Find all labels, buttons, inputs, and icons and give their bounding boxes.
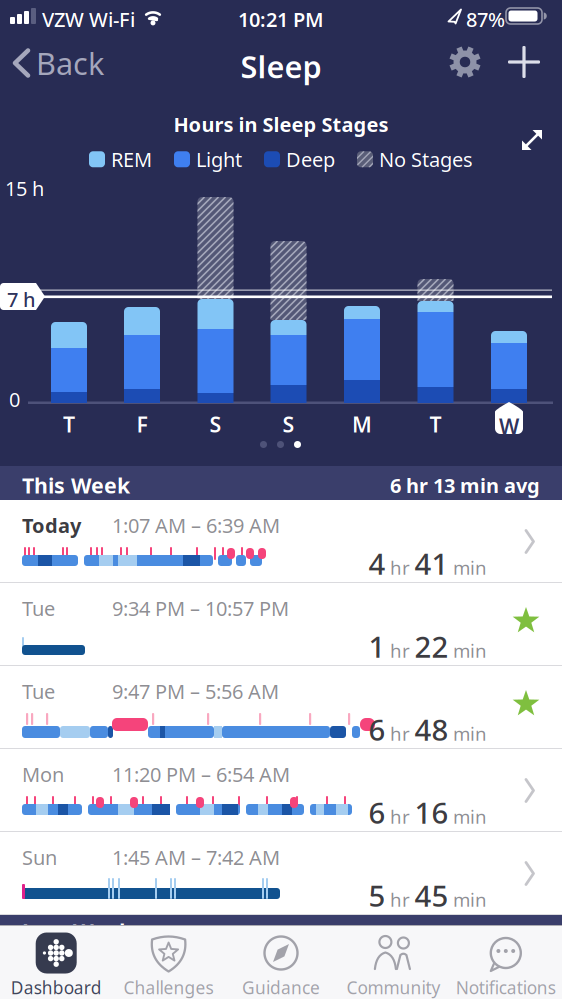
staticText: T	[429, 410, 441, 438]
staticText: 6	[368, 710, 385, 749]
button[interactable]: Sun	[0, 832, 562, 915]
staticText: This Week	[22, 471, 130, 499]
staticText: 22	[414, 627, 448, 666]
button[interactable]: Guidance	[225, 928, 337, 998]
button[interactable]: Tue	[0, 666, 562, 749]
staticText: Deep	[286, 146, 335, 173]
staticText: Tue	[22, 595, 55, 622]
staticText: min	[453, 721, 487, 746]
button[interactable]: Mon	[0, 749, 562, 832]
staticText: M	[352, 410, 372, 438]
staticText: Tue	[22, 678, 55, 705]
staticText: Challenges	[124, 976, 214, 999]
staticText: REM	[111, 146, 152, 173]
staticText: min	[453, 887, 487, 912]
staticText: hr	[390, 887, 410, 912]
button[interactable]: Community	[337, 928, 449, 998]
staticText: S	[282, 410, 294, 438]
staticText: 6	[368, 793, 385, 832]
staticText: 9:47 PM – 5:56 AM	[112, 678, 279, 705]
staticText: Last Week	[22, 917, 132, 945]
staticText: 10:21 PM	[238, 6, 324, 33]
button[interactable]: Settings	[446, 43, 484, 81]
button[interactable]: Add	[507, 45, 541, 79]
staticText: F	[136, 410, 147, 438]
staticText: 9:34 PM – 10:57 PM	[112, 595, 289, 622]
button[interactable]: Challenges	[113, 928, 225, 998]
staticText: VZW Wi-Fi	[42, 6, 135, 33]
button[interactable]: Dashboard	[0, 928, 112, 998]
staticText: Hours in Sleep Stages	[173, 111, 388, 138]
staticText: S	[209, 410, 221, 438]
button[interactable]: Tue	[0, 583, 562, 666]
button[interactable]: Today	[0, 500, 562, 583]
staticText: W	[499, 412, 519, 440]
button[interactable]: Back	[12, 42, 104, 84]
staticText: 15 h	[5, 175, 44, 202]
staticText: Notifications	[456, 976, 556, 999]
staticText: 6 hr 13 min avg	[390, 472, 540, 499]
staticText: min	[453, 555, 487, 580]
staticText: 7 h	[7, 286, 36, 313]
staticText: 45	[414, 876, 448, 915]
staticText: 4	[368, 544, 385, 583]
staticText: Back	[36, 43, 104, 83]
staticText: 41	[414, 544, 448, 583]
staticText: Today	[22, 512, 81, 539]
button[interactable]: Notifications	[450, 928, 562, 998]
staticText: hr	[390, 804, 410, 829]
staticText: Sun	[22, 844, 57, 871]
staticText: Community	[346, 976, 440, 999]
staticText: 16	[414, 793, 448, 832]
staticText: 1:07 AM – 6:39 AM	[112, 512, 280, 539]
staticText: Mon	[22, 761, 64, 788]
staticText: hr	[390, 555, 410, 580]
staticText: 11:20 PM – 6:54 AM	[112, 761, 290, 788]
staticText: 87%	[466, 6, 505, 33]
staticText: 1:45 AM – 7:42 AM	[112, 844, 280, 871]
button[interactable]: Expand chart	[519, 127, 545, 153]
staticText: hr	[390, 638, 410, 663]
staticText: No Stages	[379, 146, 473, 173]
staticText: min	[453, 804, 487, 829]
staticText: min	[453, 638, 487, 663]
staticText: Sleep	[240, 46, 321, 87]
staticText: Guidance	[242, 976, 320, 999]
staticText: 48	[414, 710, 448, 749]
staticText: T	[63, 410, 75, 438]
staticText: 0	[9, 386, 20, 413]
staticText: 5	[368, 876, 385, 915]
staticText: 1	[368, 627, 385, 666]
staticText: Dashboard	[11, 976, 102, 999]
staticText: Light	[196, 146, 242, 173]
staticText: hr	[390, 721, 410, 746]
